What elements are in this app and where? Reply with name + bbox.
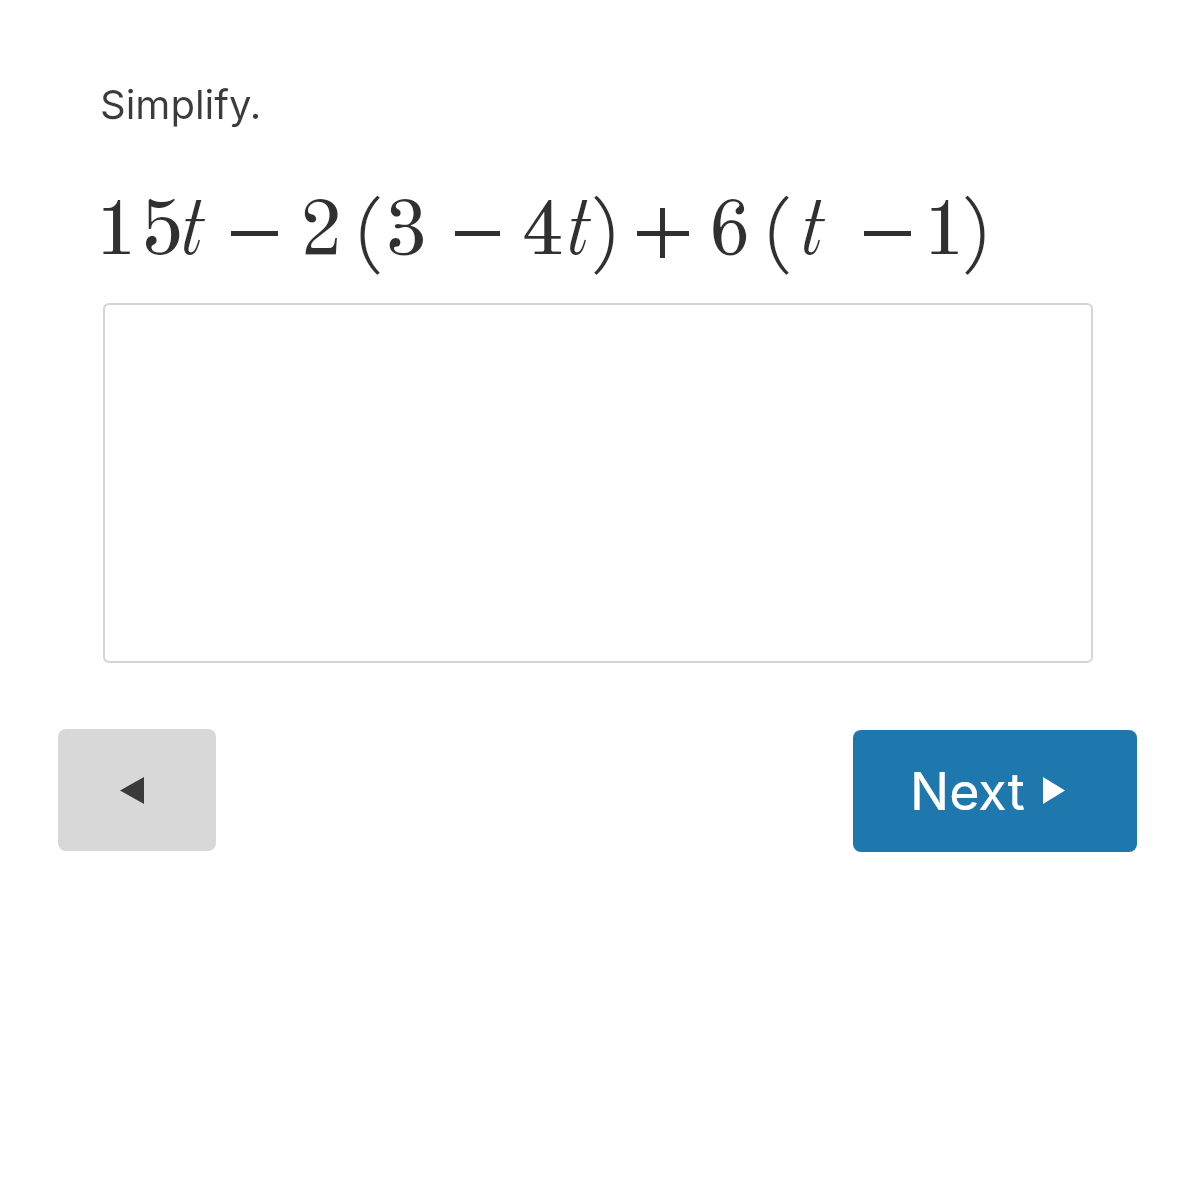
staticText: t (566, 195, 591, 273)
staticText: Simplify. (100, 80, 262, 128)
staticText: ( (352, 192, 384, 278)
staticText: ) (590, 192, 622, 278)
staticText: 2 (299, 195, 345, 273)
staticText: ) (961, 192, 993, 278)
staticText: t (800, 195, 825, 273)
staticText: t (180, 195, 205, 273)
staticText: 1 (922, 195, 968, 273)
staticText: Next (910, 760, 1025, 823)
staticText: 3 (384, 195, 430, 273)
staticText: 6 (707, 195, 753, 273)
staticText: ( (761, 192, 793, 278)
staticText: 4 (520, 195, 566, 273)
staticText: 15 (94, 195, 185, 273)
